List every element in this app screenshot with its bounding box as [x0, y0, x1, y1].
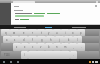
button[interactable]: a: [3, 36, 11, 43]
button[interactable]: e: [19, 29, 28, 36]
staticText: y: [48, 31, 50, 35]
button[interactable]: Home: [9, 60, 13, 64]
button[interactable]: .: [70, 51, 77, 59]
staticText: ?123: [4, 53, 10, 57]
staticText: z: [16, 45, 18, 49]
staticText: i: [65, 31, 66, 35]
staticText: .: [81, 45, 82, 49]
staticText: t: [41, 31, 42, 35]
button[interactable]: u: [53, 29, 61, 36]
button[interactable]: s: [11, 36, 19, 43]
staticText: e: [23, 31, 25, 35]
button[interactable]: y: [45, 29, 53, 36]
staticText: v: [40, 45, 42, 49]
staticText: /: [24, 53, 25, 57]
staticText: ,: [73, 45, 74, 49]
button[interactable]: l: [73, 36, 82, 43]
staticText: n: [56, 45, 58, 49]
staticText: .: [73, 53, 74, 57]
button[interactable]: f: [28, 36, 37, 43]
button[interactable]: x: [21, 43, 29, 51]
staticText: j: [59, 38, 60, 42]
staticText: b: [48, 45, 50, 49]
button[interactable]: v: [37, 43, 45, 51]
button[interactable]: ,: [69, 43, 77, 51]
button[interactable]: h: [46, 36, 55, 43]
button[interactable]: g: [37, 36, 46, 43]
button[interactable]: Backspace: [85, 29, 99, 36]
staticText: q: [5, 31, 7, 35]
button[interactable]: Hide keyboard: [88, 51, 99, 59]
staticText: h: [50, 38, 52, 42]
staticText: o: [72, 31, 74, 35]
button[interactable]: j: [55, 36, 64, 43]
button[interactable]: r: [28, 29, 37, 36]
button[interactable]: i: [61, 29, 69, 36]
button[interactable]: Space: [28, 51, 70, 59]
staticText: k: [68, 38, 70, 42]
staticText: w: [13, 31, 16, 35]
button[interactable]: t: [37, 29, 45, 36]
button[interactable]: .: [77, 43, 85, 51]
button[interactable]: [14, 4, 97, 8]
staticText: a: [6, 38, 8, 42]
staticText: c: [32, 45, 34, 49]
button[interactable]: Enter: [82, 36, 99, 43]
button[interactable]: Settings: [77, 51, 88, 59]
button[interactable]: m: [61, 43, 69, 51]
button[interactable]: b: [45, 43, 53, 51]
button[interactable]: [14, 8, 97, 12]
button[interactable]: w: [10, 29, 19, 36]
button[interactable]: Shift: [1, 43, 13, 51]
button[interactable]: Shift right: [85, 43, 99, 51]
button[interactable]: n: [53, 43, 61, 51]
button[interactable]: k: [64, 36, 73, 43]
staticText: p: [80, 31, 82, 35]
button[interactable]: o: [69, 29, 77, 36]
button[interactable]: Suggestion: [42, 26, 55, 29]
staticText: s: [14, 38, 16, 42]
button[interactable]: Back: [2, 60, 6, 64]
staticText: g: [41, 38, 43, 42]
button[interactable]: c: [29, 43, 37, 51]
button[interactable]: /: [21, 51, 28, 59]
staticText: l: [77, 38, 78, 42]
staticText: d: [23, 38, 25, 42]
button[interactable]: d: [19, 36, 28, 43]
button[interactable]: z: [13, 43, 21, 51]
button[interactable]: Suggestion: [11, 26, 29, 29]
staticText: x: [24, 45, 26, 49]
button[interactable]: q: [1, 29, 10, 36]
staticText: r: [32, 31, 34, 35]
button[interactable]: Voice input: [13, 51, 21, 59]
button[interactable]: ?123: [1, 51, 13, 59]
staticText: m: [64, 45, 67, 49]
button[interactable]: Suggestion: [69, 26, 89, 29]
button[interactable]: p: [77, 29, 85, 36]
staticText: u: [56, 31, 58, 35]
button[interactable]: Recent apps: [16, 60, 20, 64]
staticText: f: [32, 38, 33, 42]
